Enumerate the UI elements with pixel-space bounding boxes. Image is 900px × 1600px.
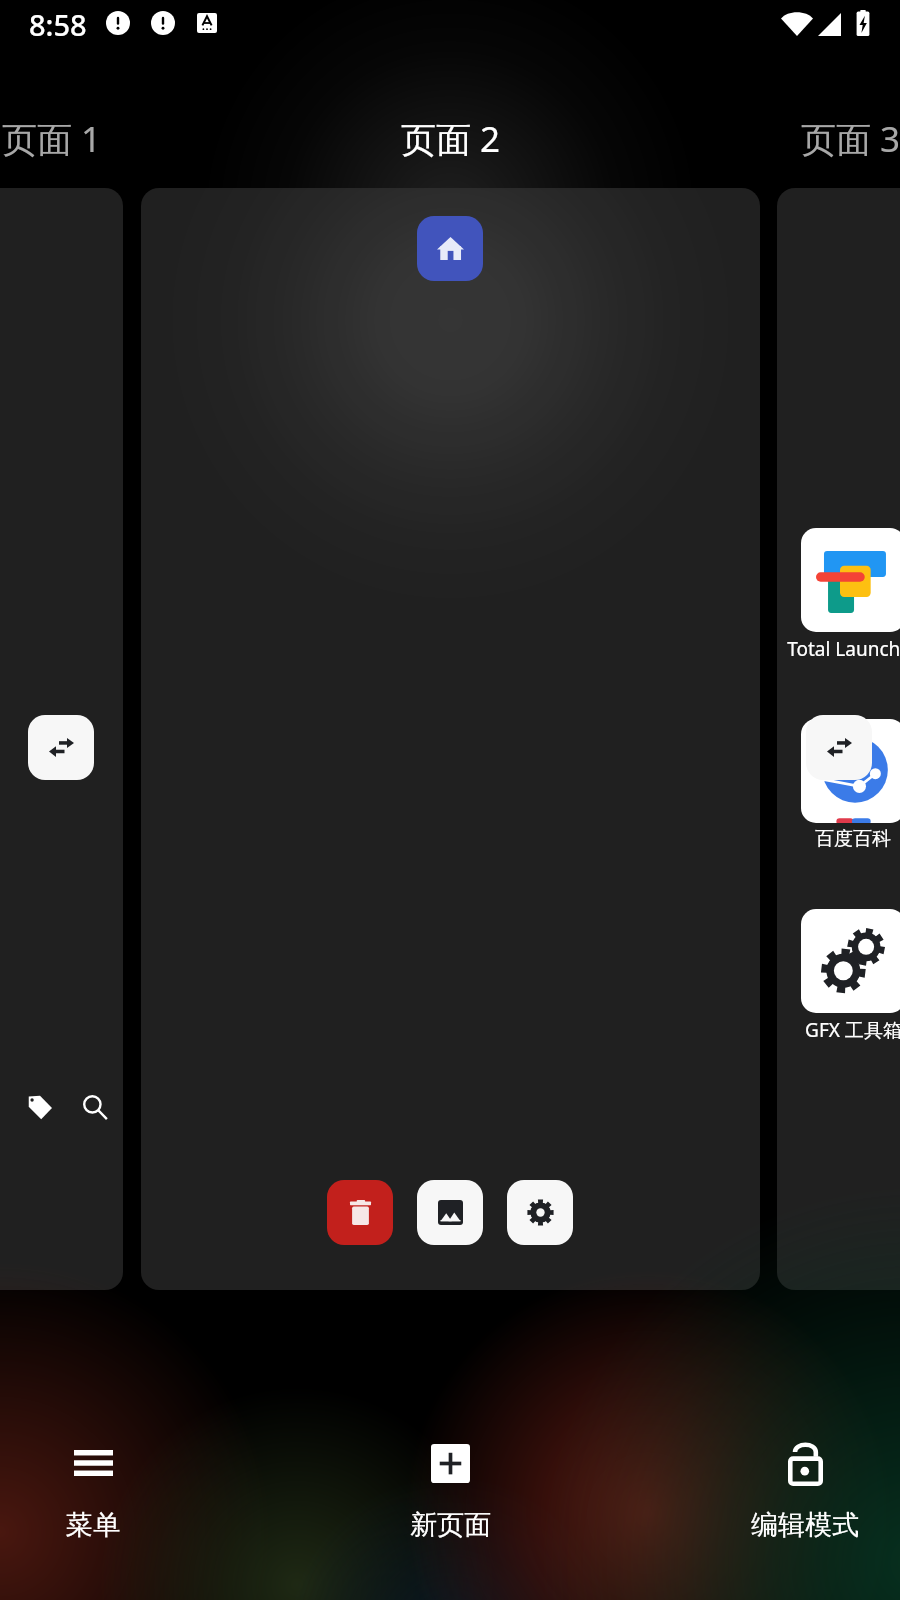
staticText: 8:58 — [29, 5, 87, 44]
button[interactable]: Swap pages — [806, 715, 872, 780]
button[interactable]: Home — [417, 216, 483, 281]
button[interactable]: 菜单 — [3, 1440, 183, 1575]
button[interactable]: 百度百科 — [753, 719, 900, 851]
staticText: 页面 2 — [401, 115, 501, 163]
staticText: 菜单 — [66, 1508, 120, 1542]
button[interactable]: 页面 2 — [401, 111, 505, 167]
button[interactable]: Search — [73, 1085, 117, 1129]
staticText: 百度百科 — [815, 827, 891, 851]
staticText: 页面 3 — [801, 115, 900, 163]
button[interactable]: Settings — [507, 1180, 573, 1245]
button[interactable]: Swap pages — [28, 715, 94, 780]
staticText: 编辑模式 — [751, 1508, 859, 1542]
button[interactable]: 新页面 — [360, 1440, 540, 1575]
button[interactable]: Wallpaper — [417, 1180, 483, 1245]
button[interactable]: 页面 3 — [801, 111, 900, 167]
button[interactable]: 编辑模式 — [715, 1440, 895, 1575]
staticText: GFX 工具箱 — [805, 1017, 900, 1043]
staticText: 页面 1 — [2, 115, 102, 163]
button[interactable]: GFX 工具箱 — [753, 909, 900, 1043]
button[interactable]: Total Launcher — [753, 528, 900, 662]
button[interactable]: Tags — [18, 1085, 62, 1129]
staticText: 新页面 — [410, 1508, 491, 1542]
button[interactable]: 页面 1 — [2, 111, 106, 167]
staticText: Total Launcher — [787, 636, 900, 662]
button[interactable]: Delete — [327, 1180, 393, 1245]
